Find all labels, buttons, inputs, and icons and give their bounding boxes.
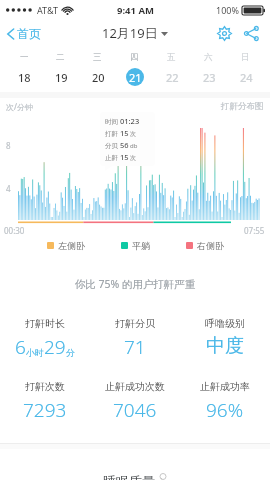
staticText: 20 xyxy=(92,70,105,85)
staticText: 右侧卧 xyxy=(197,240,224,251)
staticText: 18 xyxy=(18,70,31,85)
staticText: 00:30 xyxy=(4,225,25,236)
staticText: 打鼾时长 xyxy=(25,317,65,330)
button[interactable]: Settings xyxy=(214,23,235,44)
staticText: 19 xyxy=(55,70,68,85)
staticText: 六 xyxy=(204,52,213,63)
staticText: 100% xyxy=(216,4,239,16)
staticText: 打鼾 xyxy=(105,130,118,138)
button[interactable]: 二 xyxy=(42,46,79,92)
staticText: 分贝 xyxy=(105,142,118,150)
button[interactable]: 五 xyxy=(153,46,190,92)
staticText: 15 xyxy=(120,128,129,138)
button[interactable]: 呼噜级别 xyxy=(180,317,270,358)
staticText: 96% xyxy=(206,397,244,423)
staticText: 日 xyxy=(241,52,250,63)
staticText: 56 xyxy=(120,140,129,150)
staticText: 07:55 xyxy=(244,225,265,236)
staticText: 小时 xyxy=(26,347,44,358)
staticText: 6 xyxy=(15,334,26,360)
staticText: 平躺 xyxy=(132,240,150,251)
staticText: 4 xyxy=(6,183,11,194)
staticText: 9:41 AM xyxy=(117,4,154,17)
staticText: AT&T xyxy=(37,4,58,16)
staticText: 21 xyxy=(129,70,142,85)
button[interactable]: 止鼾成功次数 xyxy=(90,380,180,423)
staticText: 你比 75% 的用户打鼾严重 xyxy=(0,277,270,291)
staticText: 24 xyxy=(240,70,253,85)
staticText: 睡眠质量 xyxy=(103,473,155,480)
button[interactable]: 打鼾时长 xyxy=(0,317,90,360)
staticText: 打鼾分布图 xyxy=(221,101,264,112)
staticText: 7046 xyxy=(113,397,157,423)
button[interactable]: 三 xyxy=(79,46,116,92)
button[interactable]: Share xyxy=(241,23,262,44)
staticText: db xyxy=(130,142,138,150)
staticText: 中度 xyxy=(206,334,244,358)
staticText: 首页 xyxy=(17,26,41,41)
button[interactable]: 六 xyxy=(190,46,227,92)
staticText: 次/分钟 xyxy=(6,101,33,112)
staticText: 三 xyxy=(93,52,102,63)
staticText: 止鼾 xyxy=(105,154,118,162)
button[interactable]: 打鼾次数 xyxy=(0,380,90,423)
staticText: 分 xyxy=(66,347,75,358)
button[interactable]: 右侧卧 xyxy=(186,240,224,251)
button[interactable]: 平躺 xyxy=(121,240,150,251)
staticText: 打鼾分贝 xyxy=(115,317,155,330)
staticText: 23 xyxy=(203,70,216,85)
staticText: 打鼾次数 xyxy=(25,380,65,393)
button[interactable]: 12月19日 xyxy=(98,20,172,46)
staticText: 五 xyxy=(167,52,176,63)
button[interactable]: 日 xyxy=(227,46,264,92)
staticText: 7293 xyxy=(23,397,67,423)
staticText: 二 xyxy=(56,52,65,63)
staticText: 止鼾成功次数 xyxy=(105,380,165,393)
staticText: 15 xyxy=(120,152,129,162)
button[interactable]: 一 xyxy=(6,46,42,92)
staticText: 左侧卧 xyxy=(58,240,85,251)
button[interactable]: 四 xyxy=(116,46,153,92)
button[interactable]: 左侧卧 xyxy=(47,240,85,251)
staticText: 8 xyxy=(6,140,11,151)
button[interactable]: 首页 xyxy=(0,23,49,44)
staticText: 止鼾成功率 xyxy=(200,380,250,393)
staticText: 时间 xyxy=(105,118,118,126)
staticText: 29 xyxy=(44,334,66,360)
staticText: 22 xyxy=(166,70,179,85)
staticText: 一 xyxy=(20,52,29,63)
button[interactable]: 打鼾分贝 xyxy=(90,317,180,360)
staticText: 12月19日 xyxy=(102,24,158,42)
staticText: 四 xyxy=(130,52,139,63)
staticText: 呼噜级别 xyxy=(205,317,245,330)
staticText: 71 xyxy=(124,334,146,360)
button[interactable]: 止鼾成功率 xyxy=(180,380,270,423)
staticText: 次 xyxy=(130,130,136,138)
staticText: 01:23 xyxy=(120,116,140,126)
staticText: 次 xyxy=(130,154,136,162)
